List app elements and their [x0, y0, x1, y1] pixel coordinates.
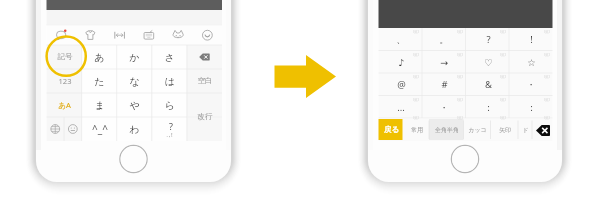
staticText: な [129, 75, 140, 88]
staticText: (笑) [500, 97, 506, 102]
button[interactable]: ! [509, 28, 553, 51]
staticText: 、 [396, 34, 406, 46]
button[interactable]: (笑) [497, 115, 508, 120]
button[interactable]: ♪ [379, 51, 423, 74]
button[interactable]: 全角半角 [429, 119, 464, 140]
staticText: ! [530, 33, 533, 46]
staticText: わ [129, 123, 140, 136]
staticText: (笑) [457, 52, 463, 57]
staticText: ? [486, 33, 491, 46]
button[interactable]: ・ [509, 73, 553, 96]
button[interactable]: な [117, 69, 152, 93]
staticText: … [397, 101, 405, 114]
button[interactable]: (笑) [541, 28, 552, 34]
button[interactable]: は [152, 69, 187, 93]
button[interactable]: 123 [47, 69, 82, 93]
staticText: 常用 [411, 126, 423, 134]
staticText: (笑) [457, 29, 463, 34]
button[interactable]: (笑) [541, 51, 552, 57]
button[interactable]: ? [153, 114, 188, 138]
button[interactable]: ☆ [509, 51, 553, 74]
staticText: や [129, 99, 140, 112]
staticText: (笑) [544, 115, 550, 120]
staticText: ☆ [527, 57, 536, 68]
button[interactable]: (笑) [410, 73, 421, 79]
button[interactable]: (笑) [497, 51, 508, 57]
staticText: (笑) [544, 97, 550, 102]
staticText: (笑) [457, 115, 463, 120]
staticText: ・ [526, 79, 536, 91]
staticText: : [530, 101, 533, 114]
button[interactable]: 改行 [187, 93, 222, 141]
staticText: (笑) [413, 115, 419, 120]
button[interactable]: (笑) [410, 96, 421, 102]
button[interactable]: 記号 [47, 45, 82, 69]
button[interactable]: (笑) [454, 28, 465, 34]
staticText: : [487, 101, 490, 114]
staticText: か [129, 51, 140, 64]
button[interactable]: (笑) [410, 115, 421, 120]
button[interactable]: ♡ [466, 51, 510, 74]
button[interactable]: ^_^ [82, 117, 117, 141]
button[interactable]: 空白 [187, 69, 222, 93]
staticText: 空白 [197, 76, 213, 86]
button[interactable]: わ [117, 117, 152, 141]
staticText: (笑) [544, 29, 550, 34]
button[interactable]: た [82, 69, 117, 93]
staticText: ♪ [398, 57, 405, 68]
button[interactable]: ら [152, 93, 187, 117]
staticText: 改行 [197, 112, 213, 122]
button[interactable]: & [466, 73, 510, 96]
button[interactable]: (笑) [541, 115, 552, 120]
button[interactable]: や [117, 93, 152, 117]
button[interactable]: あ [82, 45, 117, 69]
button[interactable]: @ [379, 73, 423, 96]
button[interactable]: … [379, 96, 423, 119]
button[interactable]: : [466, 96, 510, 119]
staticText: (笑) [413, 29, 419, 34]
button[interactable]: (笑) [454, 96, 465, 102]
button[interactable]: (笑) [410, 28, 421, 34]
staticText: ま [94, 99, 105, 112]
button[interactable]: ま [82, 93, 117, 117]
button[interactable]: 矢印 [491, 119, 519, 140]
button[interactable]: # [422, 73, 466, 96]
button[interactable]: (笑) [497, 96, 508, 102]
button[interactable]: 、 [379, 28, 423, 51]
staticText: あ [94, 51, 105, 64]
button[interactable]: → [422, 51, 466, 74]
button[interactable]: . , ! [152, 123, 187, 147]
button[interactable]: : [509, 96, 553, 119]
button[interactable]: ・ [422, 96, 466, 119]
button[interactable]: (笑) [454, 115, 465, 120]
button[interactable]: 。 [422, 28, 466, 51]
staticText: & [485, 78, 492, 91]
button[interactable]: (笑) [497, 73, 508, 79]
button[interactable]: か [117, 45, 152, 69]
button[interactable]: (笑) [497, 28, 508, 34]
staticText: ^_^ [92, 122, 108, 136]
button[interactable]: 戻る [379, 119, 403, 140]
button[interactable]: (笑) [410, 51, 421, 57]
staticText: あA [58, 100, 71, 110]
staticText: (笑) [544, 52, 550, 57]
staticText: ド [522, 126, 529, 134]
button[interactable]: (笑) [541, 73, 552, 79]
button[interactable]: あA [47, 93, 82, 117]
button[interactable]: ド [518, 119, 532, 140]
button[interactable]: (笑) [454, 51, 465, 57]
staticText: 矢印 [499, 126, 511, 134]
staticText: (笑) [500, 115, 506, 120]
button[interactable]: (笑) [541, 96, 552, 102]
staticText: は [164, 75, 175, 88]
button[interactable]: 常用 [403, 119, 430, 140]
staticText: さ [164, 51, 175, 64]
button[interactable]: カッコ [464, 119, 491, 140]
staticText: 記号 [57, 52, 73, 62]
button[interactable]: (笑) [454, 73, 465, 79]
staticText: ♡ [484, 57, 493, 68]
staticText: ら [164, 99, 175, 112]
button[interactable]: さ [152, 45, 187, 69]
button[interactable]: ? [466, 28, 510, 51]
staticText: ? [169, 120, 173, 132]
